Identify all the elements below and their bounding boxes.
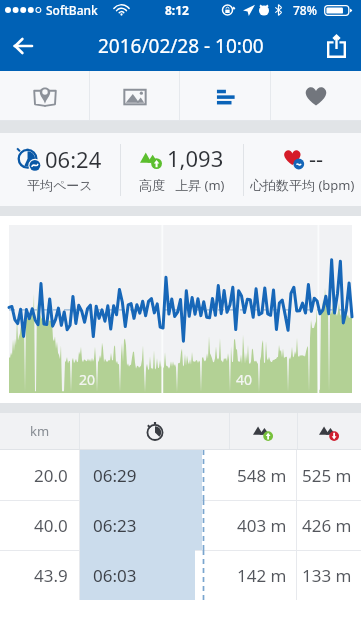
staticText: 20.0 [34, 464, 68, 487]
staticText: 高度 上昇 (m) [139, 176, 225, 194]
button[interactable]: 06:24 [0, 133, 120, 206]
staticText: 525 m [302, 464, 352, 487]
staticText: -- [309, 143, 324, 173]
button[interactable]: -- [244, 133, 361, 206]
staticText: 426 m [302, 514, 352, 537]
staticText: 06:24 [45, 144, 102, 174]
staticText: 20 [79, 370, 96, 389]
button[interactable]: Photos [90, 71, 179, 120]
button[interactable]: 1,093 [121, 133, 243, 206]
staticText: 06:03 [93, 564, 137, 587]
button[interactable]: 43.9 [0, 550, 361, 600]
button[interactable]: Back [0, 20, 44, 71]
staticText: 平均ペース [27, 177, 93, 193]
staticText: 2016/02/28 - 10:00 [98, 33, 264, 59]
button[interactable]: Heart rate [271, 71, 361, 120]
staticText: 8:12 [165, 2, 189, 18]
staticText: 06:29 [93, 464, 137, 487]
staticText: 548 m [237, 464, 287, 487]
button[interactable]: 20.0 [0, 450, 361, 500]
staticText: km [30, 422, 50, 440]
button[interactable]: Map [0, 71, 89, 120]
button[interactable]: Share [311, 20, 361, 71]
staticText: SoftBank [46, 2, 98, 18]
button[interactable]: Stats [180, 71, 270, 120]
staticText: 06:23 [93, 514, 137, 537]
staticText: 40.0 [34, 514, 68, 537]
staticText: 1,093 [167, 143, 224, 173]
staticText: 142 m [237, 564, 287, 587]
staticText: 心拍数平均 (bpm) [250, 176, 355, 194]
staticText: 403 m [237, 514, 287, 537]
staticText: 43.9 [34, 564, 68, 587]
staticText: 40 [236, 370, 253, 389]
button[interactable]: 40.0 [0, 500, 361, 550]
staticText: 78% [293, 2, 317, 18]
staticText: 133 m [302, 564, 352, 587]
